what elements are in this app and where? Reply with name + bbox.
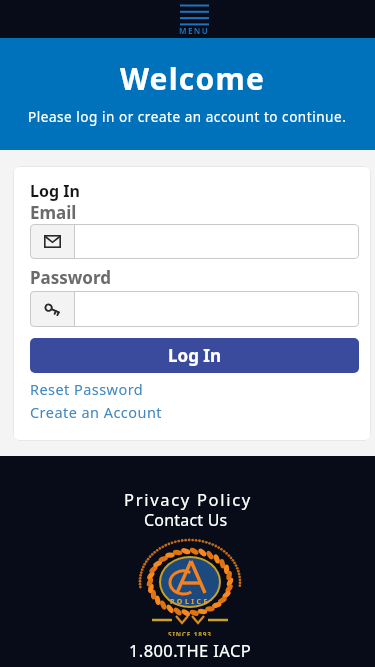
button[interactable] [30,224,359,259]
button[interactable]: Contact Us [144,509,228,531]
staticText: Welcome [120,58,266,99]
staticText: MENU [179,25,210,36]
staticText: Email [30,201,77,224]
button[interactable]: Log In [30,338,359,373]
staticText: 1.800.THE IACP [129,639,252,661]
staticText: SINCE 1893 [168,630,212,636]
staticText: POLICE [170,597,210,607]
button[interactable]: Reset Password [30,379,144,399]
button[interactable] [30,291,359,327]
staticText: Log In [168,344,221,367]
staticText: Password [30,266,111,289]
button[interactable]: MENU [179,4,210,36]
button[interactable]: Create an Account [30,402,162,422]
staticText: Please log in or create an account to co… [28,108,347,126]
button[interactable]: Privacy Policy [124,488,252,510]
staticText: Log In [30,180,80,202]
